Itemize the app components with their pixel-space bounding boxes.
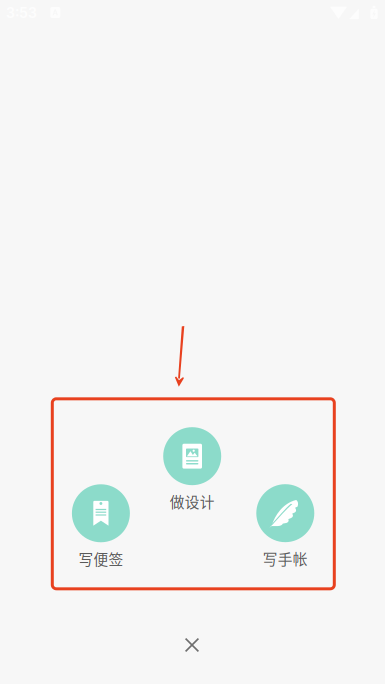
staticText: 写手帐 bbox=[263, 548, 308, 569]
button[interactable]: Close bbox=[173, 626, 211, 664]
button[interactable]: 写便签 bbox=[72, 484, 130, 569]
staticText: 做设计 bbox=[170, 491, 215, 512]
button[interactable]: 做设计 bbox=[163, 427, 221, 512]
button[interactable]: 写手帐 bbox=[256, 484, 314, 569]
staticText: 写便签 bbox=[78, 548, 123, 569]
